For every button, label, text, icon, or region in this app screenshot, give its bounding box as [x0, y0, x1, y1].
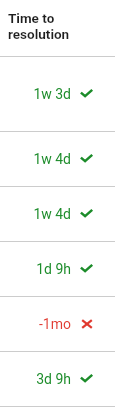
other: Met [80, 154, 93, 164]
staticText: 1d 9h [0, 261, 71, 277]
staticText: 1w 3d [0, 86, 71, 102]
button[interactable]: 1w 4d [0, 132, 135, 186]
other: Met [80, 264, 93, 274]
button[interactable]: 1w 3d [0, 57, 135, 131]
button[interactable]: 1d 9h [0, 242, 135, 296]
button[interactable]: -1mo [0, 297, 135, 351]
button[interactable]: 3d 9h [0, 352, 135, 406]
staticText: -1mo [0, 316, 71, 332]
other: Met [80, 374, 93, 384]
staticText: 3d 9h [0, 371, 71, 387]
staticText: 1w 4d [0, 151, 71, 167]
other: Met [80, 209, 93, 219]
other: Missed [80, 319, 93, 329]
staticText: Time to resolution [8, 10, 70, 42]
staticText: 1w 4d [0, 206, 71, 222]
button[interactable]: 1w 4d [0, 187, 135, 241]
other: Met [80, 89, 93, 99]
